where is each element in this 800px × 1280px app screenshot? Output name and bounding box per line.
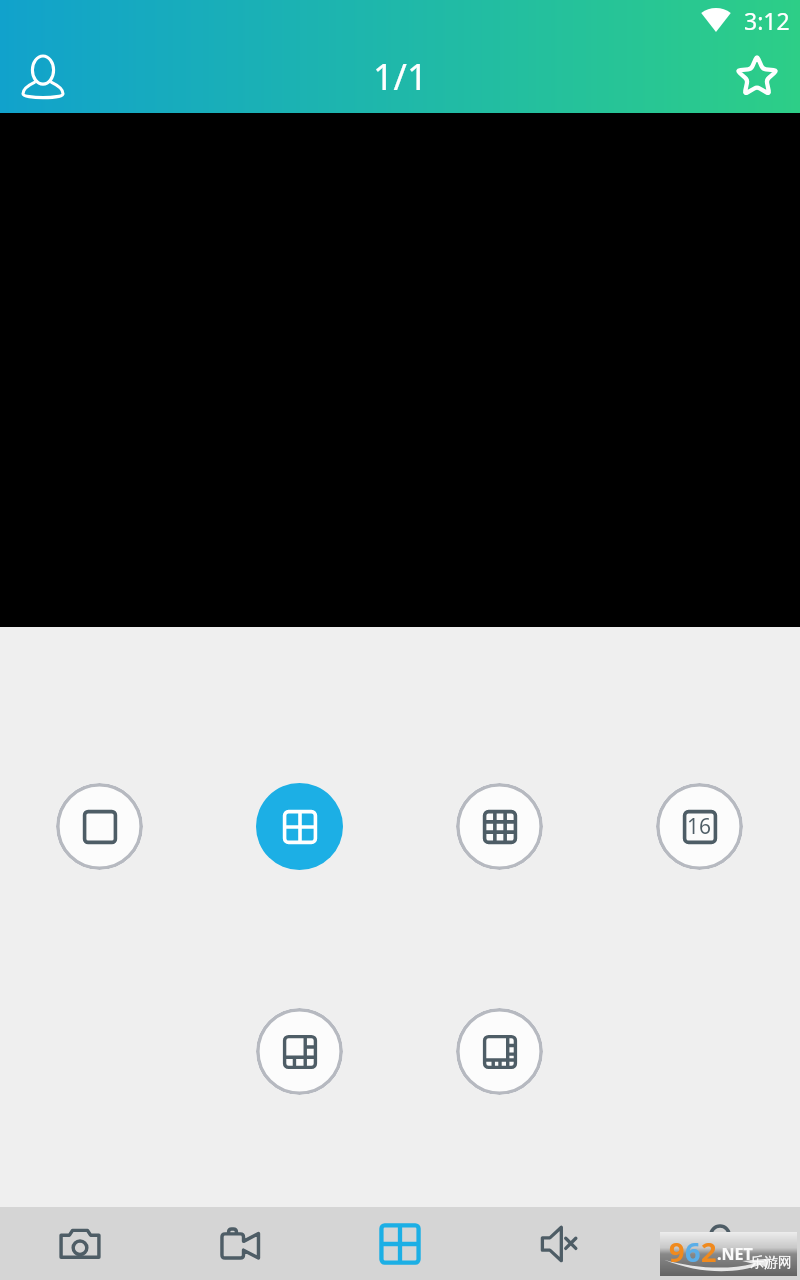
staticText: 乐游网 <box>750 1254 792 1272</box>
button[interactable]: Collage layout B <box>456 1008 543 1095</box>
button[interactable]: Lock <box>640 1207 800 1280</box>
staticText: 16 <box>687 812 712 841</box>
staticText: 3:12 <box>744 5 790 36</box>
staticText: 6 <box>685 1233 701 1270</box>
button[interactable]: Favorite <box>726 46 788 108</box>
button[interactable]: Grid <box>320 1207 480 1280</box>
button[interactable]: Collage layout A <box>256 1008 343 1095</box>
staticText: 9 <box>669 1233 685 1270</box>
staticText: .NET <box>717 1243 753 1265</box>
button[interactable]: 3 by 3 grid layout <box>456 783 543 870</box>
button[interactable]: Camera <box>0 1207 160 1280</box>
button[interactable]: 16 frame layout <box>656 783 743 870</box>
button[interactable]: Profile <box>12 46 74 108</box>
staticText: 1/1 <box>373 52 428 101</box>
button[interactable]: Video <box>160 1207 320 1280</box>
button[interactable]: Single frame layout <box>56 783 143 870</box>
button[interactable]: 2 by 2 grid layout <box>256 783 343 870</box>
staticText: 2 <box>701 1233 717 1270</box>
button[interactable]: Mute <box>480 1207 640 1280</box>
